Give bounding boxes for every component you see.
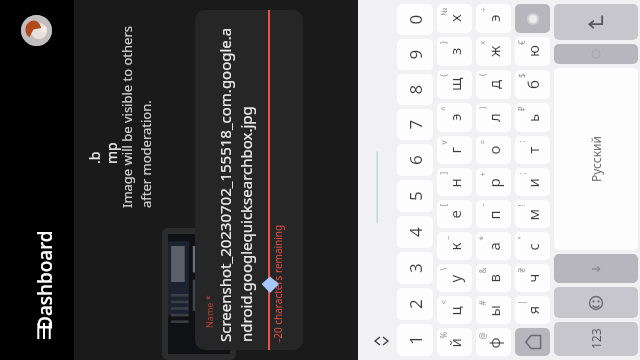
staticText: v — [437, 139, 448, 144]
staticText: ) — [477, 106, 488, 109]
button[interactable]: Emoji — [554, 287, 638, 318]
button[interactable]: 9 — [397, 39, 433, 70]
staticText: 7 — [403, 119, 426, 129]
staticText: € — [516, 40, 527, 45]
button[interactable]: Name * — [195, 10, 303, 350]
staticText: + — [476, 171, 487, 176]
staticText: ф — [483, 336, 503, 348]
button[interactable]: Expand toolbar — [368, 332, 386, 350]
button[interactable]: 8 — [397, 74, 433, 105]
staticText: б — [523, 80, 543, 89]
button[interactable]: # — [476, 296, 511, 324]
staticText: э — [445, 113, 465, 121]
staticText: ( — [477, 73, 488, 76]
staticText: 4 — [404, 227, 427, 237]
button[interactable]: { — [437, 70, 472, 99]
staticText: я — [522, 305, 542, 314]
staticText: Name * — [203, 295, 215, 328]
button[interactable]: 2 — [397, 288, 433, 320]
button[interactable]: | — [515, 296, 550, 324]
staticText: ж — [484, 45, 504, 57]
staticText: ы — [483, 304, 503, 316]
staticText: 0 — [403, 14, 426, 24]
button[interactable]: × — [476, 37, 511, 66]
button[interactable]: + — [476, 168, 511, 196]
staticText: - — [476, 203, 487, 206]
button[interactable]: } — [437, 37, 472, 66]
button[interactable]: % — [437, 328, 472, 356]
button[interactable]: Language — [554, 44, 638, 64]
staticText: к — [444, 242, 464, 250]
staticText: : — [515, 139, 526, 142]
button[interactable]: 7 — [397, 109, 433, 140]
staticText: < — [437, 299, 448, 304]
staticText: -20 characters remaining — [271, 224, 285, 342]
staticText: э — [484, 14, 504, 22]
button[interactable]: [ — [437, 200, 472, 228]
staticText: и — [522, 177, 542, 187]
button[interactable]: 123 — [554, 322, 638, 356]
staticText: т — [522, 146, 542, 153]
button[interactable]: € — [515, 37, 550, 66]
staticText: х — [445, 14, 465, 22]
button[interactable]: ] — [437, 168, 472, 196]
button[interactable]: ₴ — [515, 264, 550, 292]
staticText: .bmp — [85, 140, 121, 164]
staticText: Screenshot_20230702_155518_com.google.an… — [215, 24, 257, 342]
button[interactable]: \ — [437, 264, 472, 292]
button[interactable]: ÷ — [476, 4, 511, 33]
button[interactable]: 1 — [397, 324, 433, 356]
button[interactable]: * — [476, 232, 511, 260]
staticText: ч — [522, 273, 542, 282]
staticText: @ — [476, 331, 487, 339]
staticText: ! — [515, 203, 526, 206]
button[interactable]: $ — [515, 70, 550, 99]
button[interactable]: ; — [515, 168, 550, 196]
button[interactable]: Open navigation menu — [31, 318, 57, 344]
button[interactable]: Русский — [554, 68, 638, 250]
button[interactable]: № — [437, 4, 472, 33]
staticText: л — [484, 113, 504, 122]
staticText: ÷ — [477, 7, 488, 12]
button[interactable]: Backspace — [515, 328, 550, 356]
button[interactable]: ^ — [437, 103, 472, 132]
staticText: " — [515, 235, 526, 239]
button[interactable]: 3 — [397, 252, 433, 284]
button[interactable]: - — [476, 200, 511, 228]
staticText: г — [444, 146, 464, 153]
button[interactable]: 4 — [397, 216, 433, 248]
staticText: [ — [437, 203, 448, 206]
button[interactable]: 6 — [397, 144, 433, 176]
button[interactable]: : — [515, 136, 550, 164]
button[interactable]: Tab — [554, 254, 638, 283]
button[interactable]: ( — [476, 70, 511, 99]
button[interactable]: " — [515, 232, 550, 260]
button[interactable]: < — [437, 296, 472, 324]
button[interactable]: Enter — [554, 4, 638, 40]
button[interactable]: 0 — [397, 4, 433, 35]
button[interactable]: _ — [437, 232, 472, 260]
button[interactable]: & — [476, 264, 511, 292]
button[interactable]: Shift — [515, 4, 550, 33]
staticText: { — [438, 73, 449, 77]
staticText: Dashboard — [32, 230, 58, 330]
staticText: % — [437, 331, 448, 338]
staticText: о — [483, 145, 503, 154]
staticText: щ — [445, 77, 465, 91]
staticText: м — [522, 208, 542, 220]
button[interactable]: Selected image preview — [162, 228, 236, 360]
staticText: ^ — [438, 106, 449, 111]
button[interactable]: ₽ — [515, 103, 550, 132]
staticText: д — [484, 79, 504, 89]
staticText: 8 — [403, 84, 426, 94]
button[interactable]: v — [437, 136, 472, 164]
staticText: н — [444, 177, 464, 187]
button[interactable]: ! — [515, 200, 550, 228]
button[interactable]: = — [476, 136, 511, 164]
staticText: 9 — [403, 49, 426, 59]
button[interactable]: @ — [476, 328, 511, 356]
button[interactable]: 5 — [397, 180, 433, 212]
button[interactable]: Profile — [21, 15, 52, 46]
button[interactable]: ) — [476, 103, 511, 132]
